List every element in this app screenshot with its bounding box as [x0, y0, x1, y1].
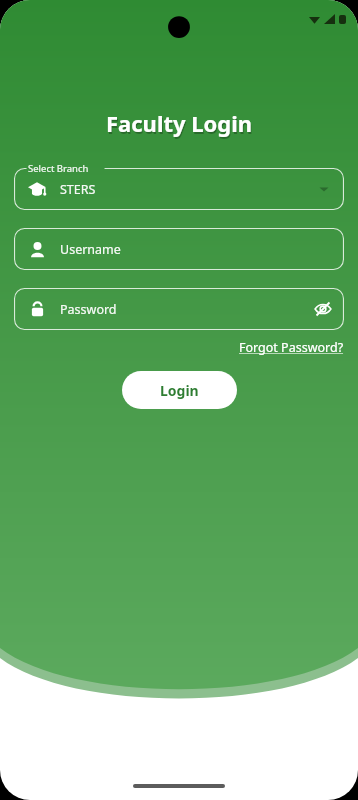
button[interactable]: Username	[14, 228, 344, 270]
button[interactable]: Show password	[308, 294, 338, 324]
button[interactable]: Forgot Password?	[225, 336, 358, 359]
staticText: Login	[160, 381, 199, 400]
button[interactable]: STERS	[14, 168, 344, 210]
staticText: STERS	[60, 181, 96, 198]
staticText: Faculty Login	[107, 110, 254, 140]
button[interactable]: Login	[122, 371, 237, 409]
staticText: Faculty Login	[106, 108, 253, 138]
staticText: Select Branch	[28, 162, 89, 175]
staticText: Password	[60, 301, 117, 318]
button[interactable]: Password	[14, 288, 344, 330]
staticText: Username	[60, 241, 121, 258]
staticText: Forgot Password?	[239, 339, 344, 356]
